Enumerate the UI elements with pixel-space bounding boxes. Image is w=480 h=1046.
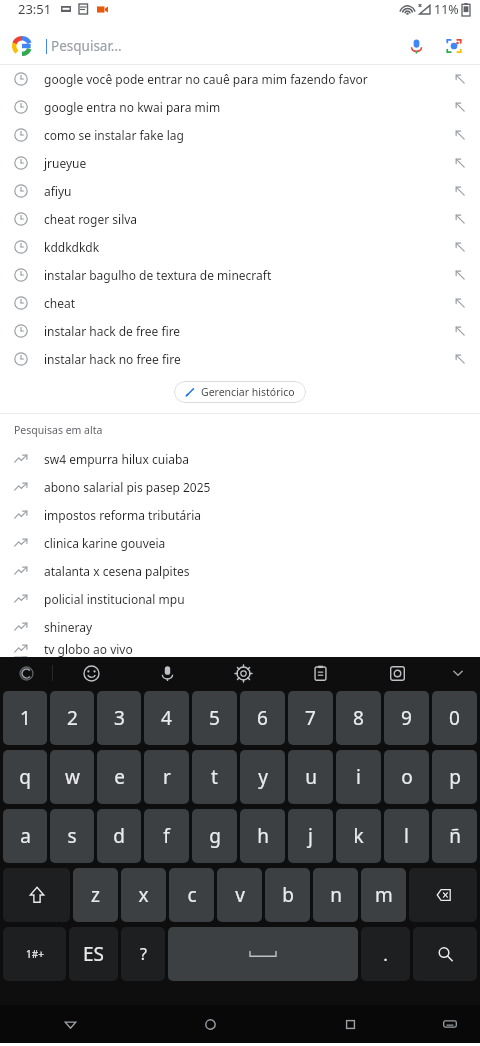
button[interactable]: g (192, 809, 237, 863)
button[interactable]: 8 (336, 691, 381, 745)
button[interactable]: ñ (432, 809, 477, 863)
staticText: google entra no kwai para mim (44, 99, 454, 115)
button[interactable]: 1 (3, 691, 47, 745)
button[interactable]: Voice search (404, 34, 428, 58)
button[interactable]: policial institucional mpu (0, 585, 480, 613)
button[interactable]: 4 (144, 691, 189, 745)
button[interactable]: Gboard (0, 657, 52, 689)
button[interactable]: Back (0, 1005, 140, 1043)
button[interactable]: 7 (288, 691, 333, 745)
staticText: clinica karine gouveia (44, 535, 466, 551)
button[interactable]: atalanta x cesena palpites (0, 557, 480, 585)
button[interactable]: tv globo ao vivo (0, 641, 480, 657)
button[interactable]: Backspace (409, 868, 477, 922)
button[interactable]: o (384, 750, 429, 804)
button[interactable]: google você pode entrar no cauê para mim… (0, 65, 480, 93)
staticText: 23:51 (18, 0, 52, 18)
button[interactable]: 3 (97, 691, 141, 745)
button[interactable]: u (288, 750, 333, 804)
button[interactable]: Clipboard (282, 657, 359, 689)
button[interactable]: Space (168, 927, 358, 981)
button[interactable]: d (97, 809, 141, 863)
staticText: instalar bagulho de textura de minecraft (44, 267, 454, 283)
button[interactable]: 5 (192, 691, 237, 745)
button[interactable]: impostos reforma tributária (0, 501, 480, 529)
button[interactable]: Pesquisar... (0, 28, 480, 64)
staticText: b (282, 882, 294, 908)
button[interactable]: como se instalar fake lag (0, 121, 480, 149)
button[interactable]: Gerenciar histórico (174, 381, 306, 403)
button[interactable]: afiyu (0, 177, 480, 205)
button[interactable]: y (240, 750, 285, 804)
staticText: google você pode entrar no cauê para mim… (44, 71, 454, 87)
button[interactable]: cheat roger silva (0, 205, 480, 233)
button[interactable]: instalar hack no free fire (0, 345, 480, 373)
button[interactable]: 9 (384, 691, 429, 745)
staticText: 7 (305, 705, 316, 731)
button[interactable]: cheat (0, 289, 480, 317)
button[interactable]: Stickers (359, 657, 436, 689)
button[interactable]: j (288, 809, 333, 863)
staticText: z (91, 882, 100, 908)
button[interactable]: Google Lens (442, 34, 466, 58)
button[interactable]: s (50, 809, 94, 863)
button[interactable]: 6 (240, 691, 285, 745)
staticText: j (308, 823, 313, 849)
button[interactable]: abono salarial pis pasep 2025 (0, 473, 480, 501)
button[interactable]: i (336, 750, 381, 804)
button[interactable]: Hide keyboard (420, 1005, 480, 1043)
button[interactable]: x (121, 868, 166, 922)
staticText: instalar hack no free fire (44, 351, 454, 367)
button[interactable]: Settings (205, 657, 282, 689)
staticText: o (401, 764, 413, 790)
button[interactable]: Search (413, 927, 477, 981)
button[interactable]: Emoji (53, 657, 129, 689)
button[interactable]: l (384, 809, 429, 863)
button[interactable]: z (73, 868, 118, 922)
staticText: c (187, 882, 197, 908)
button[interactable]: q (3, 750, 47, 804)
button[interactable]: m (361, 868, 406, 922)
staticText: shineray (44, 619, 466, 635)
button[interactable]: 1#+ (3, 927, 66, 981)
button[interactable]: e (97, 750, 141, 804)
button[interactable]: sw4 empurra hilux cuiaba (0, 445, 480, 473)
button[interactable]: Hide keyboard (436, 666, 480, 680)
button[interactable]: f (144, 809, 189, 863)
button[interactable]: . (361, 927, 410, 981)
button[interactable]: r (144, 750, 189, 804)
button[interactable]: b (265, 868, 310, 922)
button[interactable]: shineray (0, 613, 480, 641)
button[interactable]: k (336, 809, 381, 863)
button[interactable]: c (169, 868, 214, 922)
button[interactable]: Shift (3, 868, 70, 922)
button[interactable]: Voice input (129, 657, 205, 689)
button[interactable]: Recents (280, 1005, 420, 1043)
button[interactable]: 0 (432, 691, 477, 745)
button[interactable]: Home (140, 1005, 280, 1043)
button[interactable]: clinica karine gouveia (0, 529, 480, 557)
staticText: policial institucional mpu (44, 591, 466, 607)
button[interactable]: v (217, 868, 262, 922)
staticText: ES (83, 941, 104, 967)
button[interactable]: kddkdkdk (0, 233, 480, 261)
button[interactable]: h (240, 809, 285, 863)
button[interactable]: ? (121, 927, 165, 981)
staticText: 6 (257, 705, 268, 731)
staticText: h (257, 823, 269, 849)
staticText: r (163, 764, 171, 790)
staticText: s (67, 823, 77, 849)
button[interactable]: w (50, 750, 94, 804)
button[interactable]: t (192, 750, 237, 804)
button[interactable]: p (432, 750, 477, 804)
button[interactable]: jrueyue (0, 149, 480, 177)
button[interactable]: n (313, 868, 358, 922)
button[interactable]: google entra no kwai para mim (0, 93, 480, 121)
button[interactable]: instalar hack de free fire (0, 317, 480, 345)
button[interactable]: ES (69, 927, 118, 981)
button[interactable]: instalar bagulho de textura de minecraft (0, 261, 480, 289)
staticText: impostos reforma tributária (44, 507, 466, 523)
button[interactable]: 2 (50, 691, 94, 745)
button[interactable]: a (3, 809, 47, 863)
staticText: m (375, 882, 393, 908)
